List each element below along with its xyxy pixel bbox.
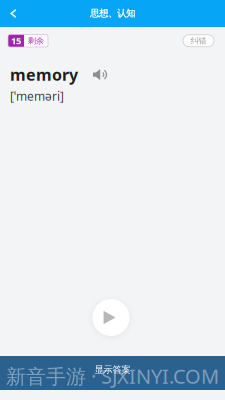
staticText: 纠错 — [190, 36, 206, 46]
button[interactable]: Pronounce — [93, 69, 109, 80]
staticText: 显示答案 — [94, 364, 130, 375]
staticText: memory — [10, 64, 78, 85]
staticText: 新音手游 · SJXINYI.COM — [6, 363, 219, 389]
staticText: 剩余 — [28, 36, 44, 46]
staticText: 15 — [11, 35, 21, 47]
button[interactable]: 纠错 — [183, 35, 214, 47]
staticText: [ˈmeməri] — [10, 88, 64, 104]
button[interactable]: Back — [0, 0, 27, 27]
staticText: 思想、认知 — [90, 8, 135, 19]
button[interactable]: Play — [92, 299, 129, 336]
